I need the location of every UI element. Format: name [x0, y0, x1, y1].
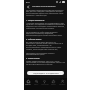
button[interactable]: Главная: [24, 78, 32, 90]
button[interactable]: Профиль: [58, 78, 67, 90]
staticText: Профиль: [59, 84, 66, 86]
staticText: Запрещается использовать сервис в против…: [26, 52, 65, 56]
staticText: Вы несёте полную ответственность за сохр…: [26, 41, 65, 51]
button[interactable]: Подтвердить и продолжить: [27, 71, 64, 75]
staticText: 3. Ограничения: [26, 57, 40, 59]
button[interactable]: Избранное: [40, 78, 49, 90]
staticText: Сервис предоставляется «как есть». Мы не…: [26, 60, 65, 66]
staticText: Избранное: [41, 84, 49, 86]
staticText: Главная: [25, 84, 31, 86]
staticText: 2. Учётная запись: [26, 38, 42, 40]
staticText: Заказы: [51, 84, 56, 86]
button[interactable]: Поиск: [32, 78, 40, 90]
staticText: Условия использования: [32, 5, 56, 8]
staticText: Мы оставляем за собой право изменять отд…: [26, 31, 65, 37]
staticText: 1. Общие положения: [26, 19, 45, 21]
staticText: Настоящие Условия использования регулиру…: [26, 9, 65, 17]
staticText: Используя приложение, вы подтверждаете с…: [26, 22, 65, 30]
staticText: Подтвердить и продолжить: [33, 72, 59, 75]
staticText: Поиск: [34, 84, 39, 86]
button[interactable]: Back: [24, 4, 32, 9]
button[interactable]: Заказы: [49, 78, 58, 90]
staticText: 9:41: [26, 1, 30, 4]
